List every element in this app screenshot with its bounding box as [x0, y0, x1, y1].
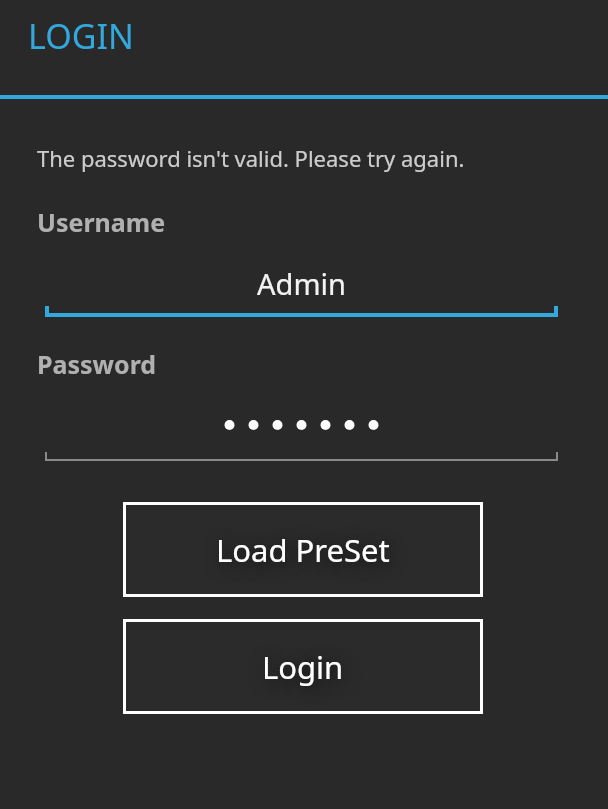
button[interactable]: Password: [45, 405, 558, 461]
staticText: Admin: [257, 264, 346, 303]
staticText: Username: [37, 205, 166, 239]
button[interactable]: Load PreSet: [123, 502, 483, 597]
other: Password: [45, 413, 558, 437]
staticText: LOGIN: [28, 13, 134, 59]
staticText: Login: [262, 646, 344, 688]
button[interactable]: Admin: [45, 261, 558, 317]
staticText: The password isn't valid. Please try aga…: [37, 143, 465, 173]
button[interactable]: Login: [123, 619, 483, 714]
staticText: Password: [37, 347, 157, 381]
staticText: Load PreSet: [216, 529, 390, 571]
